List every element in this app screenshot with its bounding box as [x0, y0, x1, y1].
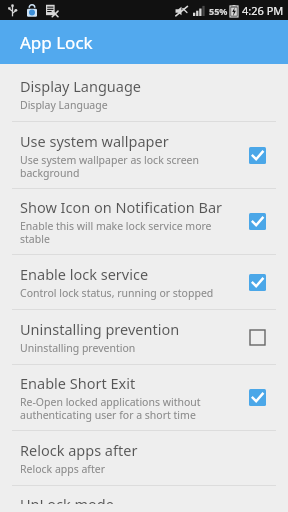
- button[interactable]: Uninstalling prevention: [0, 310, 288, 364]
- button[interactable]: Enable lock service: [0, 255, 288, 309]
- button[interactable]: Relock apps after: [0, 431, 288, 485]
- staticText: Enable this will make lock service more …: [20, 219, 241, 246]
- staticText: 55%: [209, 5, 228, 17]
- button[interactable]: Use system wallpaper: [0, 122, 288, 188]
- staticText: Use system wallpaper: [20, 131, 169, 151]
- staticText: Show Icon on Notification Bar: [20, 197, 223, 217]
- staticText: App Lock: [20, 31, 93, 54]
- staticText: UnLock mode: [20, 494, 114, 504]
- staticText: Use system wallpaper as lock screen back…: [20, 153, 241, 180]
- staticText: Uninstalling prevention: [20, 341, 136, 355]
- staticText: Relock apps after: [20, 440, 138, 460]
- staticText: Display Language: [20, 76, 142, 96]
- staticText: Display Language: [20, 98, 108, 112]
- staticText: 4:26 PM: [242, 3, 284, 18]
- staticText: Relock apps after: [20, 462, 106, 476]
- staticText: Re-Open locked applications without auth…: [20, 395, 241, 422]
- button[interactable]: Display Language: [0, 71, 288, 121]
- button[interactable]: Enable Short Exit: [0, 365, 288, 430]
- button[interactable]: UnLock mode: [0, 486, 288, 512]
- staticText: Control lock status, running or stopped: [20, 286, 214, 300]
- staticText: Enable Short Exit: [20, 373, 136, 393]
- staticText: Enable lock service: [20, 264, 149, 284]
- staticText: Uninstalling prevention: [20, 319, 180, 339]
- button[interactable]: Show Icon on Notification Bar: [0, 189, 288, 254]
